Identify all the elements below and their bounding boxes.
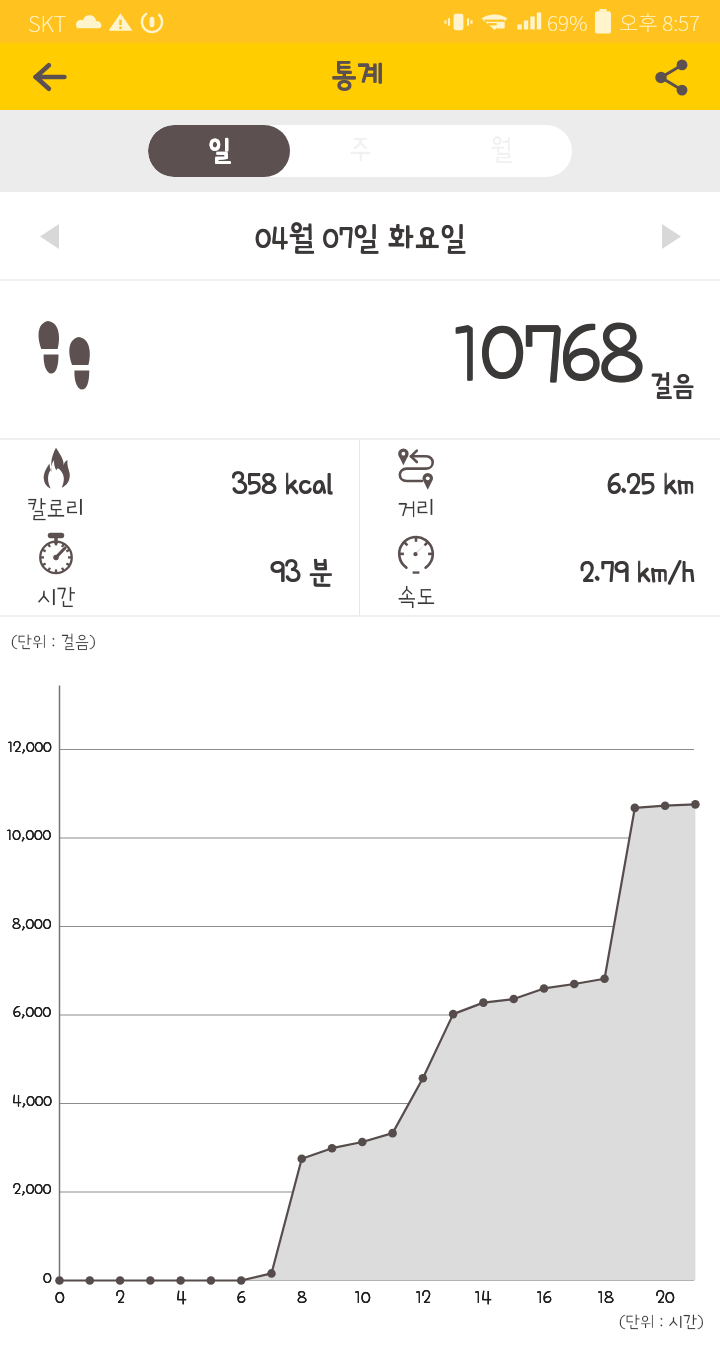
staticText: 12 xyxy=(415,1287,431,1307)
staticText: 93 분 xyxy=(270,556,333,587)
staticText: 10 xyxy=(354,1287,371,1307)
staticText: 12 xyxy=(415,1287,431,1307)
staticText: 6.25 km xyxy=(608,468,695,499)
staticText: 0 xyxy=(55,1287,65,1307)
staticText: 18 xyxy=(597,1287,614,1307)
staticText: 거리 xyxy=(397,497,436,521)
staticText: 6,000 xyxy=(13,1003,52,1021)
staticText: 93 분 xyxy=(270,557,333,588)
staticText: 일 xyxy=(209,136,232,164)
staticText: 걸음 xyxy=(650,371,696,399)
staticText: 14 xyxy=(474,1287,492,1307)
staticText: 10,000 xyxy=(6,826,52,844)
staticText: 04월 07일 화요일 xyxy=(255,221,466,253)
button[interactable]: 칼로리 xyxy=(0,440,359,527)
staticText: 12,000 xyxy=(7,738,52,756)
button[interactable]: 속도 xyxy=(360,527,720,615)
staticText: 8,000 xyxy=(12,915,52,933)
staticText: 04월 07일 화요일 xyxy=(255,222,466,254)
staticText: 10,000 xyxy=(6,826,52,844)
staticText: 칼로리 xyxy=(27,497,85,521)
staticText: (단위 : 걸음) xyxy=(11,633,96,651)
staticText: 10768 xyxy=(450,308,642,399)
staticText: 20 xyxy=(656,1287,675,1307)
staticText: 0 xyxy=(43,1269,52,1287)
staticText: 18 xyxy=(597,1287,614,1307)
staticText: 4 xyxy=(176,1287,187,1307)
staticText: 8,000 xyxy=(12,915,52,933)
button[interactable]: 거리 xyxy=(360,440,720,527)
staticText: 16 xyxy=(536,1287,552,1307)
staticText: 시간 xyxy=(37,585,76,609)
staticText: 6 xyxy=(237,1287,246,1307)
staticText: 4,000 xyxy=(12,1092,52,1110)
staticText: 8,000 xyxy=(12,915,52,933)
staticText: 358 kcal xyxy=(232,469,334,500)
staticText: 걸음 xyxy=(649,371,695,399)
staticText: 93 분 xyxy=(271,557,334,588)
staticText: 걸음 xyxy=(650,372,696,400)
staticText: 2,000 xyxy=(13,1180,52,1198)
staticText: 12,000 xyxy=(7,738,52,756)
staticText: 14 xyxy=(474,1287,492,1307)
staticText: 12,000 xyxy=(7,738,52,756)
staticText: 주 xyxy=(349,136,372,164)
staticText: 2.79 km/h xyxy=(581,556,695,587)
staticText: 월 xyxy=(490,136,513,164)
staticText: 2,000 xyxy=(13,1180,52,1198)
staticText: 10768 xyxy=(450,307,642,398)
button[interactable]: 일 xyxy=(148,125,290,177)
staticText: 10 xyxy=(354,1287,371,1307)
staticText: 6.25 km xyxy=(608,469,695,500)
staticText: 358 kcal xyxy=(231,468,333,499)
staticText: 6.25 km xyxy=(607,469,694,500)
button[interactable]: Back xyxy=(22,50,76,104)
staticText: 4,000 xyxy=(12,1092,52,1110)
staticText: 걸음 xyxy=(649,372,695,400)
button[interactable]: Previous day xyxy=(24,211,74,261)
staticText: 8,000 xyxy=(12,915,52,933)
staticText: 14 xyxy=(474,1287,492,1307)
staticText: SKT xyxy=(28,6,67,38)
staticText: 속도 xyxy=(397,585,436,609)
staticText: 2,000 xyxy=(13,1180,52,1198)
button[interactable]: 월 xyxy=(431,125,572,177)
staticText: 8 xyxy=(297,1287,307,1307)
staticText: 8 xyxy=(297,1287,307,1307)
staticText: 6 xyxy=(237,1287,246,1307)
staticText: 2 xyxy=(116,1287,125,1307)
staticText: 6.25 km xyxy=(607,468,694,499)
staticText: 통계 xyxy=(331,58,385,91)
staticText: 10 xyxy=(354,1287,371,1307)
staticText: 04월 07일 화요일 xyxy=(256,221,467,253)
staticText: 0 xyxy=(55,1287,65,1307)
staticText: 16 xyxy=(536,1287,552,1307)
staticText: 04월 07일 화요일 xyxy=(256,222,467,254)
staticText: 69% xyxy=(547,7,588,37)
staticText: 통계 xyxy=(330,59,384,92)
button[interactable]: Share xyxy=(644,50,698,104)
staticText: 6,000 xyxy=(13,1003,52,1021)
staticText: 358 kcal xyxy=(232,468,334,499)
staticText: 10768 xyxy=(451,307,643,398)
staticText: (단위 : 시간) xyxy=(619,1313,704,1331)
button[interactable]: Next day xyxy=(646,211,696,261)
staticText: 358 kcal xyxy=(231,469,333,500)
staticText: 2,000 xyxy=(13,1180,52,1198)
staticText: 6 xyxy=(237,1287,246,1307)
staticText: 10,000 xyxy=(6,826,52,844)
staticText: 6 xyxy=(237,1287,246,1307)
staticText: 4 xyxy=(176,1287,187,1307)
button[interactable]: 시간 xyxy=(0,527,359,615)
staticText: 2 xyxy=(116,1287,125,1307)
staticText: 4 xyxy=(176,1287,187,1307)
staticText: 4 xyxy=(176,1287,187,1307)
staticText: 12 xyxy=(415,1287,431,1307)
staticText: 2 xyxy=(116,1287,125,1307)
staticText: 2.79 km/h xyxy=(580,557,694,588)
staticText: 2.79 km/h xyxy=(580,556,694,587)
staticText: 12,000 xyxy=(7,738,52,756)
staticText: 8 xyxy=(297,1287,307,1307)
staticText: 통계 xyxy=(330,58,384,91)
